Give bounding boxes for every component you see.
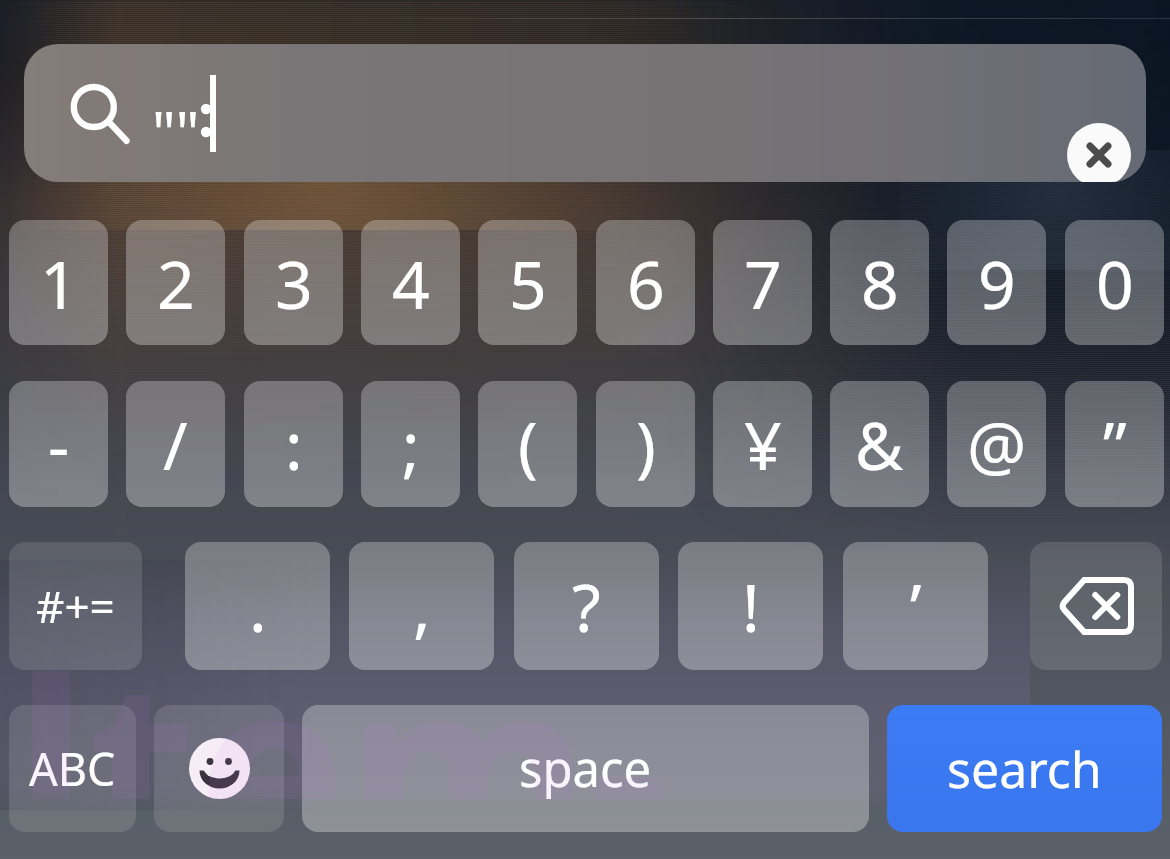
button[interactable]: ’	[843, 542, 988, 670]
button[interactable]: 4	[361, 220, 460, 345]
button[interactable]: &	[830, 381, 929, 507]
staticText: -	[48, 399, 70, 489]
staticText: 3	[275, 238, 313, 328]
button[interactable]: #+=	[9, 542, 142, 670]
staticText: )	[636, 399, 656, 489]
button[interactable]: 3	[244, 220, 343, 345]
button[interactable]: 8	[830, 220, 929, 345]
staticText: ,	[413, 561, 431, 651]
button[interactable]: space	[302, 705, 869, 832]
button[interactable]: search	[887, 705, 1162, 832]
button[interactable]: ;	[361, 381, 460, 507]
staticText: (	[518, 399, 538, 489]
button[interactable]: -	[9, 381, 108, 507]
staticText: ’	[910, 561, 922, 651]
button[interactable]: ABC	[9, 705, 136, 832]
staticText: #+=	[36, 576, 115, 636]
staticText: 2	[157, 238, 195, 328]
button[interactable]: ¥	[713, 381, 812, 507]
staticText: ¥	[744, 399, 782, 489]
staticText: 7	[744, 238, 782, 328]
staticText: ABC	[29, 738, 116, 799]
staticText: !	[742, 561, 760, 651]
staticText: &	[855, 399, 904, 489]
staticText: ”	[1103, 399, 1127, 489]
staticText: 0	[1096, 238, 1134, 328]
staticText: search	[947, 735, 1102, 803]
button[interactable]: (	[478, 381, 577, 507]
staticText: 9	[978, 238, 1016, 328]
button[interactable]: )	[596, 381, 695, 507]
button[interactable]: ,	[349, 542, 494, 670]
staticText: 5	[509, 238, 547, 328]
button[interactable]: 9	[947, 220, 1046, 345]
button[interactable]: !	[678, 542, 823, 670]
button[interactable]: /	[126, 381, 225, 507]
staticText: 1	[40, 238, 78, 328]
staticText: space	[519, 735, 652, 802]
staticText: /	[163, 399, 188, 489]
button[interactable]: .	[185, 542, 330, 670]
button[interactable]: 5	[478, 220, 577, 345]
button[interactable]: 7	[713, 220, 812, 345]
staticText: ;	[402, 399, 420, 489]
button[interactable]: Emoji keyboard	[154, 705, 284, 832]
staticText: 4	[392, 238, 430, 328]
button[interactable]: :	[244, 381, 343, 507]
staticText: ?	[572, 561, 601, 651]
button[interactable]: 2	[126, 220, 225, 345]
button[interactable]: Backspace	[1030, 542, 1162, 670]
button[interactable]: @	[947, 381, 1046, 507]
staticText: :	[285, 399, 303, 489]
staticText: @	[967, 399, 1027, 489]
button[interactable]: ""	[24, 44, 1146, 182]
staticText: .	[249, 561, 267, 651]
staticText: ""	[152, 92, 200, 171]
staticText: 8	[861, 238, 899, 328]
button[interactable]: 1	[9, 220, 108, 345]
button[interactable]: 0	[1065, 220, 1164, 345]
button[interactable]: ?	[514, 542, 659, 670]
button[interactable]: Clear text	[1067, 123, 1131, 182]
button[interactable]: ”	[1065, 381, 1164, 507]
staticText: 6	[627, 238, 665, 328]
button[interactable]: 6	[596, 220, 695, 345]
staticText: ltem-get	[14, 600, 1030, 799]
